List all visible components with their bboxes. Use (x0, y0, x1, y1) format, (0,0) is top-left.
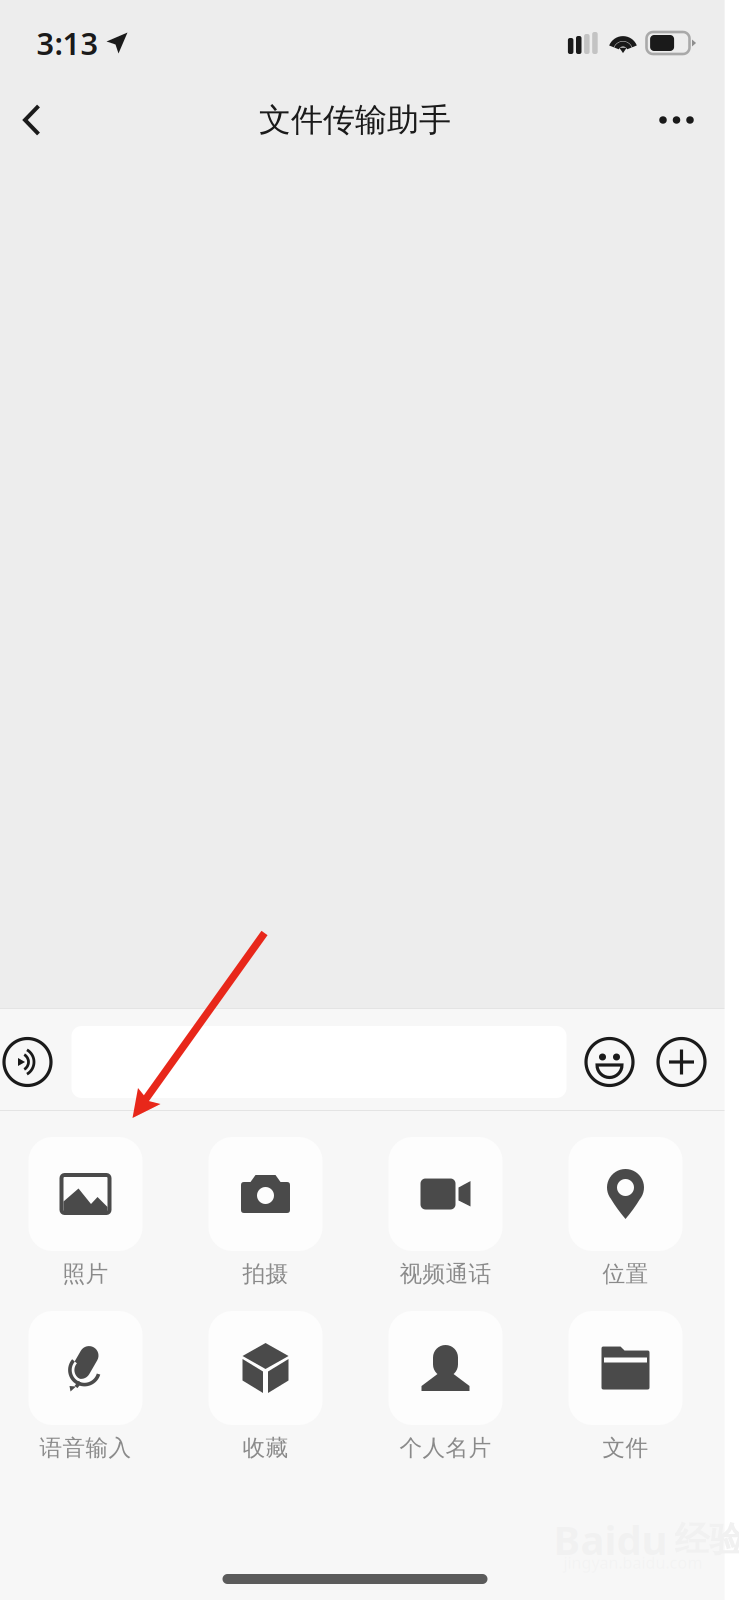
staticText: 语音输入 (39, 1434, 131, 1462)
button[interactable]: 语音输入 (28, 1311, 142, 1463)
staticText: 经验 (674, 1518, 739, 1561)
staticText: 个人名片 (399, 1434, 491, 1462)
button[interactable]: 文件 (568, 1311, 682, 1463)
button[interactable]: Message field (71, 1026, 566, 1098)
button[interactable]: 位置 (568, 1137, 682, 1289)
button[interactable]: Emoji (576, 1026, 642, 1098)
button[interactable]: More options (648, 1026, 714, 1098)
button[interactable]: 视频通话 (388, 1137, 502, 1289)
staticText: 3:13 (36, 23, 98, 63)
staticText: 文件 (602, 1434, 648, 1462)
button[interactable]: Voice input (0, 1026, 60, 1098)
button[interactable]: 照片 (28, 1137, 142, 1289)
button[interactable]: Back (0, 82, 69, 158)
button[interactable]: 拍摄 (208, 1137, 322, 1289)
staticText: 位置 (602, 1260, 648, 1288)
button[interactable]: More (638, 82, 714, 158)
button[interactable]: 个人名片 (388, 1311, 502, 1463)
staticText: 文件传输助手 (259, 100, 451, 140)
staticText: 照片 (62, 1260, 108, 1288)
button[interactable]: 收藏 (208, 1311, 322, 1463)
staticText: 收藏 (242, 1434, 288, 1462)
staticText: 视频通话 (399, 1260, 491, 1288)
staticText: 拍摄 (242, 1260, 288, 1288)
